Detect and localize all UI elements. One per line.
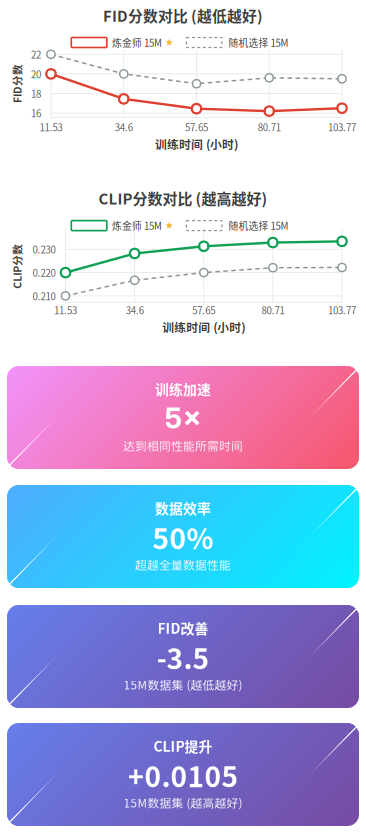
button[interactable]: FID改善: [7, 605, 359, 708]
staticText: 34.6: [126, 303, 144, 317]
staticText: 随机选择 15M: [229, 35, 289, 50]
staticText: 80.71: [258, 120, 281, 134]
staticText: 炼金师 15M: [112, 35, 162, 50]
staticText: CLIP分数: [0, 259, 39, 274]
staticText: 训练时间 (小时): [155, 135, 238, 152]
staticText: 103.77: [328, 120, 356, 134]
staticText: 5×: [164, 401, 201, 435]
staticText: 22: [31, 47, 41, 61]
staticText: 0.220: [32, 266, 55, 280]
staticText: 0.210: [32, 289, 55, 303]
staticText: 16: [31, 106, 41, 120]
staticText: 103.77: [328, 303, 356, 317]
staticText: FID分数对比 (越低越好): [103, 4, 263, 26]
staticText: 57.65: [192, 303, 215, 317]
staticText: CLIP提升: [153, 736, 212, 756]
button[interactable]: CLIP提升: [7, 723, 359, 826]
staticText: 20: [31, 67, 41, 81]
staticText: 达到相同性能所需时间: [123, 437, 243, 454]
staticText: 超越全量数据性能: [135, 556, 231, 573]
staticText: +0.0105: [127, 755, 238, 795]
staticText: 11.53: [39, 120, 62, 134]
staticText: 15M数据集 (越低越好): [123, 676, 242, 693]
staticText: FID改善: [157, 618, 208, 638]
staticText: 18: [31, 86, 41, 101]
staticText: 训练加速: [155, 379, 211, 399]
staticText: 80.71: [261, 303, 284, 317]
staticText: 训练时间 (小时): [162, 318, 245, 335]
staticText: 11.53: [54, 303, 77, 317]
staticText: 数据效率: [155, 498, 211, 518]
staticText: 50%: [152, 517, 213, 557]
staticText: 炼金师 15M: [112, 219, 162, 233]
staticText: 34.6: [115, 120, 133, 134]
button[interactable]: 训练加速: [7, 366, 359, 469]
staticText: 15M数据集 (越高越好): [123, 794, 242, 811]
staticText: FID分数: [0, 76, 36, 91]
staticText: -3.5: [156, 637, 209, 677]
staticText: CLIP分数对比 (越高越好): [98, 187, 267, 209]
staticText: 0.230: [32, 242, 55, 256]
button[interactable]: 数据效率: [7, 485, 359, 588]
staticText: 57.65: [185, 120, 208, 134]
staticText: 随机选择 15M: [229, 219, 289, 233]
